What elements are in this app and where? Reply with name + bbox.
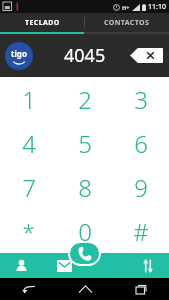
staticText: 5 <box>78 127 92 160</box>
staticText: 9 <box>134 171 148 204</box>
staticText: 2 <box>78 83 92 116</box>
button[interactable]: Home <box>57 278 113 300</box>
button[interactable]: 6 <box>113 121 169 165</box>
staticText: 6 <box>134 127 148 160</box>
button[interactable]: 3 <box>113 77 169 121</box>
button[interactable]: 8 <box>57 165 113 209</box>
button[interactable]: Back <box>0 278 57 300</box>
button[interactable]: TECLADO <box>0 13 84 32</box>
button[interactable]: Call <box>70 243 99 264</box>
button[interactable]: 4 <box>0 121 57 165</box>
button[interactable]: CONTACTOS <box>85 13 169 32</box>
button[interactable]: 7 <box>0 165 57 209</box>
button[interactable]: 5 <box>57 121 113 165</box>
staticText: 0 <box>78 215 92 248</box>
button[interactable]: Messages <box>43 253 85 278</box>
staticText: TECLADO <box>25 18 60 28</box>
staticText: 7 <box>22 171 36 204</box>
staticText: 11:10 <box>148 2 166 12</box>
staticText: # <box>133 215 149 248</box>
staticText: 8 <box>78 171 92 204</box>
staticText: 4 <box>22 127 36 160</box>
button[interactable]: Backspace <box>130 48 163 63</box>
staticText: 3 <box>134 83 148 116</box>
button[interactable]: 2 <box>57 77 113 121</box>
staticText: tigo <box>11 48 27 59</box>
staticText: H+ <box>122 4 130 11</box>
button[interactable]: 1 <box>0 77 57 121</box>
staticText: CONTACTOS <box>104 18 150 28</box>
button[interactable]: 9 <box>113 165 169 209</box>
button[interactable]: Contacts <box>0 253 43 278</box>
button[interactable]: # <box>113 209 169 253</box>
button[interactable]: Tigo <box>5 42 33 70</box>
button[interactable]: Transfer <box>127 253 169 278</box>
staticText: 4045 <box>64 43 106 68</box>
button[interactable]: Recents <box>113 278 169 300</box>
button[interactable]: 0 <box>57 209 113 253</box>
staticText: * <box>22 216 35 246</box>
button[interactable]: * <box>0 209 57 253</box>
staticText: 1 <box>22 83 36 116</box>
